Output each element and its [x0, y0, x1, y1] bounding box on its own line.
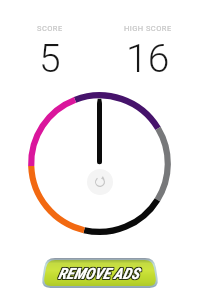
staticText: 5 — [39, 36, 61, 82]
staticText: SCORE — [37, 24, 63, 33]
staticText: REMOVE ADS — [58, 266, 140, 284]
staticText: REMOVE ADS — [57, 264, 139, 282]
staticText: REMOVE ADS — [59, 266, 141, 284]
staticText: 16 — [126, 36, 170, 82]
staticText: HIGH SCORE — [124, 24, 172, 33]
staticText: REMOVE ADS — [58, 265, 140, 283]
staticText: REMOVE ADS — [57, 266, 139, 284]
button[interactable]: Replay — [87, 169, 113, 195]
staticText: REMOVE ADS — [57, 265, 139, 283]
staticText: REMOVE ADS — [59, 264, 141, 282]
staticText: REMOVE ADS — [59, 265, 141, 283]
staticText: REMOVE ADS — [58, 264, 140, 282]
button[interactable]: REMOVE ADS — [41, 258, 159, 288]
